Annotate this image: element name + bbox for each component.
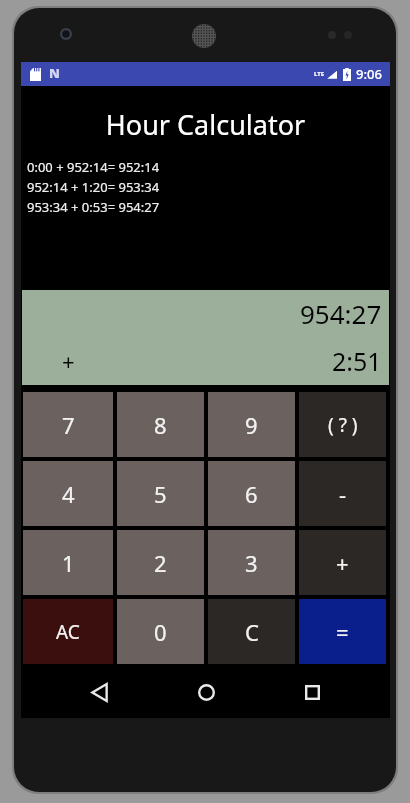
staticText: ( ? ) xyxy=(328,412,358,438)
staticText: 8 xyxy=(154,410,167,440)
button[interactable]: Recent apps xyxy=(284,666,340,718)
staticText: 953:34 + 0:53= 954:27 xyxy=(27,198,160,216)
staticText: 0:00 + 952:14= 952:14 xyxy=(27,158,160,176)
button[interactable]: ( ? ) xyxy=(299,392,386,457)
button[interactable]: 2 xyxy=(117,530,204,595)
staticText: 9 xyxy=(245,410,258,440)
button[interactable]: = xyxy=(299,599,386,664)
button[interactable]: 0 xyxy=(117,599,204,664)
button[interactable]: AC xyxy=(23,599,113,664)
button[interactable]: - xyxy=(299,461,386,526)
staticText: 952:14 + 1:20= 953:34 xyxy=(27,178,160,196)
staticText: AC xyxy=(56,619,80,645)
button[interactable]: 1 xyxy=(23,530,113,595)
button[interactable]: 6 xyxy=(208,461,295,526)
staticText: 3 xyxy=(245,548,258,578)
staticText: = xyxy=(336,617,349,647)
button[interactable]: 7 xyxy=(23,392,113,457)
staticText: - xyxy=(339,479,347,509)
staticText: 6 xyxy=(245,479,258,509)
button[interactable]: C xyxy=(208,599,295,664)
button[interactable]: 3 xyxy=(208,530,295,595)
button[interactable]: 8 xyxy=(117,392,204,457)
staticText: + xyxy=(62,346,75,376)
button[interactable]: Back xyxy=(71,666,127,718)
staticText: 0 xyxy=(154,617,167,647)
button[interactable]: Home xyxy=(178,666,234,718)
button[interactable]: 4 xyxy=(23,461,113,526)
staticText: 4 xyxy=(62,479,75,509)
staticText: 2 xyxy=(154,548,167,578)
button[interactable]: 5 xyxy=(117,461,204,526)
staticText: C xyxy=(245,617,259,647)
staticText: 5 xyxy=(154,479,167,509)
button[interactable]: + xyxy=(299,530,386,595)
staticText: N xyxy=(49,64,60,82)
staticText: 954:27 xyxy=(300,296,382,331)
staticText: 7 xyxy=(62,410,75,440)
staticText: 2:51 xyxy=(332,344,382,378)
button[interactable]: 9 xyxy=(208,392,295,457)
staticText: + xyxy=(336,548,349,578)
staticText: 1 xyxy=(62,548,75,578)
staticText: 9:06 xyxy=(356,65,382,83)
staticText: LTE xyxy=(314,70,325,78)
staticText: Hour Calculator xyxy=(21,106,390,143)
